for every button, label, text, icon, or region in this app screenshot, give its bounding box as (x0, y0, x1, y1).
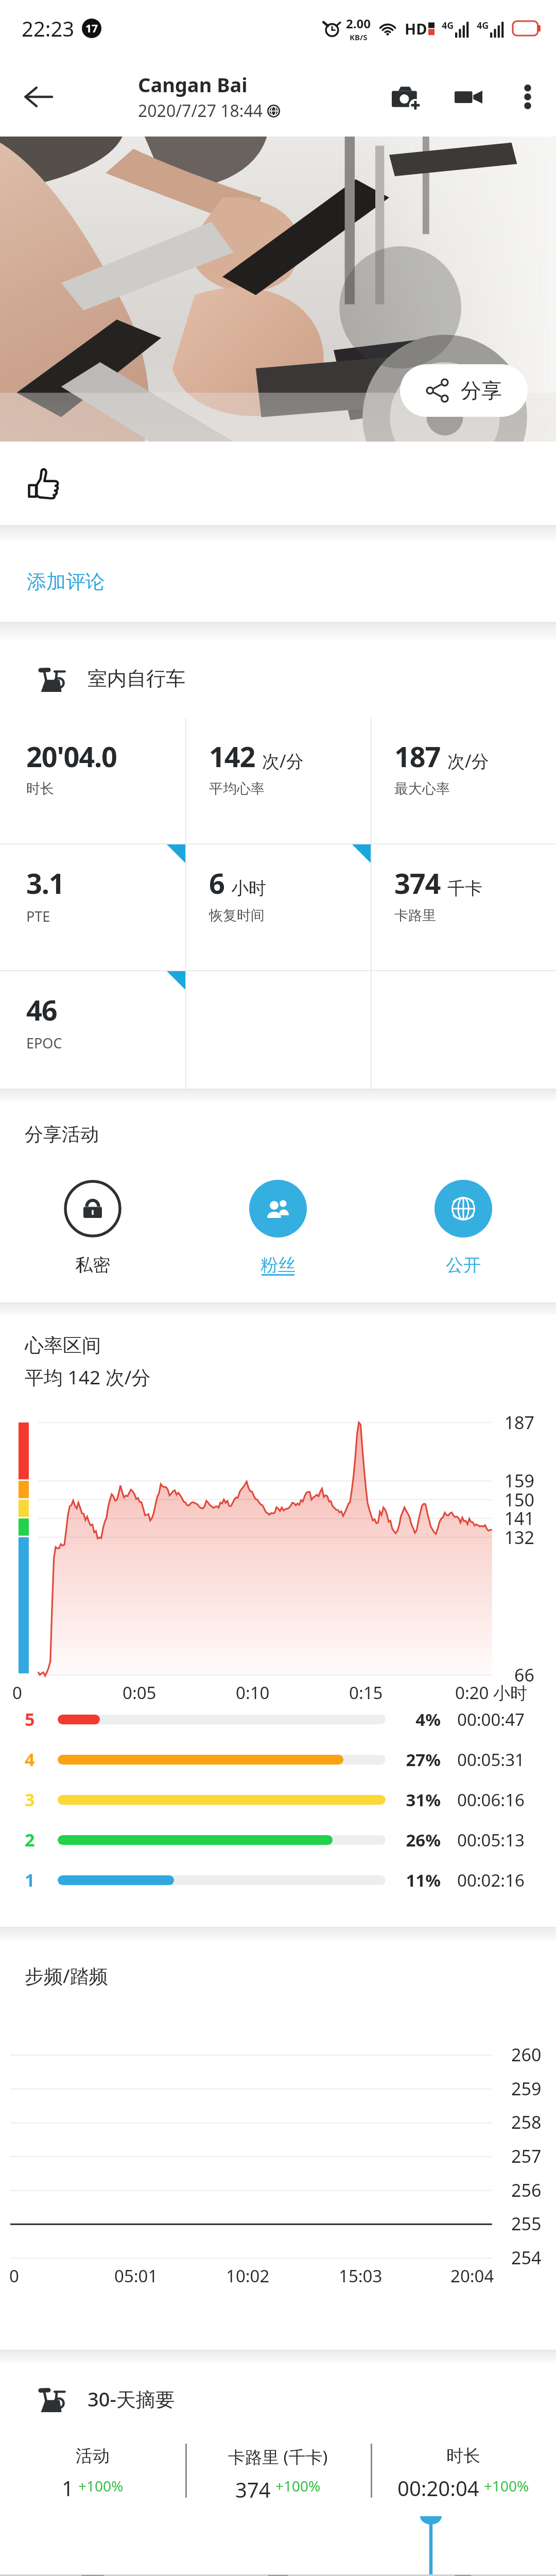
staticText: 步频/踏频 (25, 1962, 108, 1989)
staticText: 分享 (461, 378, 502, 403)
staticText: 187 (504, 1411, 534, 1434)
staticText: 0 (12, 1681, 22, 1704)
staticText: 05:01 (114, 2264, 158, 2287)
staticText: 0 (9, 2264, 19, 2287)
staticText: 最大心率 (394, 780, 450, 798)
staticText: 平均 142 次/分 (25, 1364, 151, 1390)
staticText: 374 (394, 864, 441, 902)
staticText: 22:23 (22, 14, 75, 42)
staticText: 374 (235, 2476, 271, 2498)
staticText: 142 (209, 737, 255, 775)
staticText: 27% (391, 1748, 441, 1771)
staticText: 时长 (26, 780, 54, 798)
staticText: 46 (26, 991, 57, 1029)
button[interactable]: 46 (0, 971, 185, 1089)
button[interactable]: Video (438, 66, 499, 128)
staticText: Cangan Bai (138, 71, 248, 98)
staticText: 255 (511, 2212, 542, 2235)
staticText: +100% (78, 2476, 124, 2496)
staticText: HD (405, 19, 427, 39)
staticText: 159 (504, 1469, 534, 1493)
staticText: 00:06:16 (457, 1788, 525, 1811)
staticText: 4G (442, 19, 454, 32)
staticText: 1 (25, 1868, 35, 1892)
staticText: 分享活动 (25, 1123, 99, 1146)
staticText: 次/分 (447, 749, 489, 773)
staticText: 2020/7/27 18:44 (138, 99, 263, 122)
staticText: 00:02:16 (457, 1869, 525, 1892)
button[interactable]: 私密 (0, 1180, 185, 1276)
staticText: 00:05:31 (457, 1748, 525, 1771)
staticText: 6 (209, 864, 224, 902)
staticText: 30-天摘要 (88, 2385, 175, 2412)
staticText: 20:04 (450, 2264, 494, 2287)
button[interactable]: 374 (371, 844, 556, 971)
button[interactable]: 活动 (0, 2435, 185, 2498)
staticText: 11% (391, 1869, 441, 1892)
button[interactable]: 粉丝 (185, 1180, 371, 1278)
staticText: 平均心率 (209, 780, 265, 798)
staticText: 257 (511, 2144, 542, 2168)
staticText: 150 (504, 1488, 534, 1512)
staticText: EPOC (26, 1033, 62, 1053)
staticText: 卡路里 (394, 907, 436, 924)
staticText: 恢复时间 (209, 907, 265, 924)
button[interactable]: 添加评论 (0, 541, 556, 622)
staticText: 258 (511, 2110, 542, 2134)
button[interactable]: 分享 (400, 364, 528, 417)
button[interactable] (185, 971, 371, 1089)
staticText: 260 (511, 2043, 542, 2066)
staticText: 卡路里 (千卡) (228, 2445, 328, 2468)
staticText: 0:20 小时 (455, 1681, 528, 1704)
staticText: +100% (484, 2476, 529, 2496)
staticText: KB/S (350, 32, 368, 42)
staticText: 4G (477, 19, 489, 32)
staticText: 10:02 (226, 2264, 270, 2287)
staticText: 0:05 (123, 1681, 157, 1704)
staticText: 3 (25, 1788, 35, 1811)
button[interactable]: 公开 (371, 1180, 556, 1276)
staticText: 室内自行车 (88, 666, 185, 691)
staticText: 3.1 (26, 864, 64, 902)
staticText: 小时 (231, 877, 266, 900)
staticText: 活动 (76, 2445, 110, 2467)
staticText: +100% (275, 2476, 321, 2496)
staticText: 粉丝 (260, 1254, 296, 1276)
staticText: 00:20:04 (397, 2474, 479, 2498)
staticText: 千卡 (447, 877, 482, 900)
staticText: 0:15 (349, 1681, 383, 1704)
staticText: 1 (62, 2474, 74, 2498)
staticText: 公开 (446, 1254, 481, 1276)
button[interactable]: 142 (185, 718, 371, 844)
staticText: 0:10 (236, 1681, 270, 1704)
staticText: PTE (26, 907, 50, 926)
button[interactable]: 时长 (371, 2435, 556, 2498)
staticText: 256 (511, 2178, 542, 2202)
staticText: 时长 (446, 2445, 480, 2467)
staticText: 次/分 (262, 749, 304, 773)
staticText: 31% (391, 1788, 441, 1811)
staticText: 私密 (75, 1254, 110, 1276)
staticText: 4 (25, 1748, 35, 1771)
button[interactable]: 20'04.0 (0, 718, 185, 844)
staticText: 2.00 (346, 15, 371, 32)
button[interactable]: 3.1 (0, 844, 185, 971)
button[interactable]: Back (0, 58, 77, 135)
button[interactable]: Add photo (376, 66, 438, 128)
button[interactable]: Like (10, 450, 77, 517)
staticText: 20'04.0 (26, 737, 117, 775)
staticText: 15:03 (339, 2264, 383, 2287)
staticText: 5 (25, 1707, 35, 1731)
button[interactable]: More options (499, 69, 556, 125)
staticText: 2 (25, 1828, 35, 1852)
staticText: 4% (391, 1708, 441, 1731)
button[interactable]: 187 (371, 718, 556, 844)
staticText: 26% (391, 1828, 441, 1852)
button[interactable]: 6 (185, 844, 371, 971)
staticText: 254 (511, 2246, 542, 2269)
button[interactable]: 卡路里 (千卡) (185, 2435, 371, 2498)
staticText: 187 (394, 737, 441, 775)
staticText: 17 (85, 21, 98, 36)
staticText: 00:05:13 (457, 1828, 525, 1852)
